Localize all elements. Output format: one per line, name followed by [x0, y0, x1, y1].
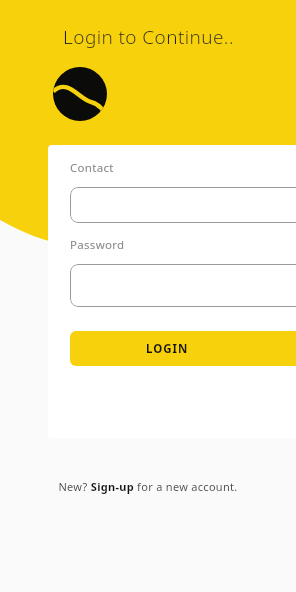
button[interactable] — [70, 264, 296, 307]
staticText: Password — [70, 237, 125, 253]
button[interactable]: New? Sign-up for a new account. — [58, 479, 238, 494]
button[interactable]: LOGIN — [70, 331, 296, 366]
button[interactable] — [70, 187, 296, 223]
staticText: New? Sign-up for a new account. — [58, 479, 238, 494]
staticText: LOGIN — [146, 341, 189, 357]
other: App logo — [53, 67, 107, 121]
staticText: Contact — [70, 160, 114, 176]
staticText: Login to Continue.. — [63, 24, 234, 50]
